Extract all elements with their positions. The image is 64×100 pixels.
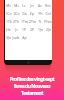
staticText: 2Tm <box>29 19 36 24</box>
button[interactable]: Lc <box>20 1 28 9</box>
button[interactable]: 2Tm <box>28 17 36 25</box>
button[interactable]: Ep <box>28 9 36 17</box>
staticText: 1P <box>22 27 26 32</box>
staticText: 1Co <box>5 11 12 16</box>
staticText: Ga <box>22 11 27 16</box>
staticText: Jn <box>30 3 34 8</box>
staticText: He <box>6 27 11 32</box>
button[interactable]: 3Jn <box>5 33 12 41</box>
button[interactable]: 1Co <box>5 9 12 17</box>
staticText: Lc <box>22 3 26 8</box>
staticText: 1Jn <box>38 27 43 32</box>
staticText: 2Jn <box>46 27 51 32</box>
staticText: Rm <box>45 3 51 8</box>
staticText: 2P <box>30 27 34 32</box>
staticText: 1Th <box>6 19 12 24</box>
button[interactable]: Ac <box>36 1 44 9</box>
staticText: Ep <box>30 11 34 16</box>
button[interactable]: 1Th <box>5 17 12 25</box>
button[interactable]: 1Jn <box>36 25 44 33</box>
staticText: Profitez des vingt-sept livres du Nouvea… <box>0 76 64 97</box>
button[interactable]: Jc <box>12 25 20 33</box>
staticText: Jc <box>15 27 18 32</box>
button[interactable]: Ap <box>20 33 28 41</box>
button[interactable]: 1P <box>20 25 28 33</box>
button[interactable]: Mt <box>5 1 12 9</box>
staticText: Ph <box>38 11 43 16</box>
button[interactable]: Tt <box>36 17 44 25</box>
button[interactable]: 2P <box>28 25 36 33</box>
button[interactable]: Ph <box>36 9 44 17</box>
button[interactable]: Jn <box>28 1 36 9</box>
staticText: Jude <box>12 35 20 40</box>
staticText: 1Tm <box>21 19 28 24</box>
button[interactable]: 2Jn <box>44 25 52 33</box>
button[interactable]: Ga <box>20 9 28 17</box>
staticText: Ac <box>38 3 42 8</box>
staticText: 3Jn <box>6 35 11 40</box>
button[interactable]: 2Th <box>12 17 20 25</box>
button[interactable]: Col <box>44 9 52 17</box>
staticText: 2Co <box>13 11 20 16</box>
staticText: Mc <box>14 3 19 8</box>
staticText: Mt <box>6 3 11 8</box>
staticText: Phm <box>44 19 52 24</box>
button[interactable]: Jude <box>12 33 20 41</box>
button[interactable]: Rm <box>44 1 52 9</box>
button[interactable]: 1Tm <box>20 17 28 25</box>
staticText: Col <box>45 11 51 16</box>
staticText: 2Th <box>13 19 19 24</box>
button[interactable]: 2Co <box>12 9 20 17</box>
button[interactable]: Phm <box>44 17 52 25</box>
button[interactable]: He <box>5 25 12 33</box>
staticText: Tt <box>38 19 42 24</box>
button[interactable]: Mc <box>12 1 20 9</box>
staticText: Ap <box>22 35 27 40</box>
